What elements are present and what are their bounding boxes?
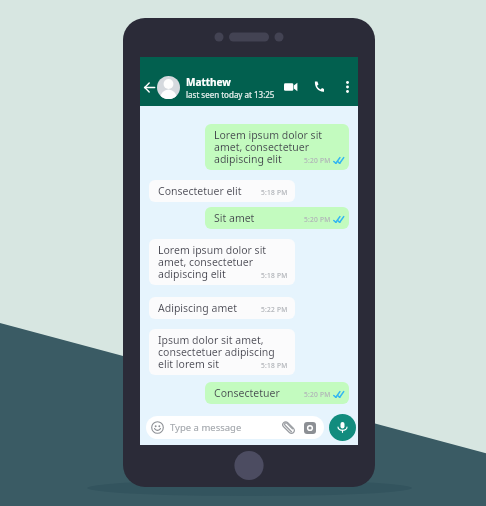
button[interactable]: Consectetuer xyxy=(205,382,349,404)
staticText: 5:22 PM xyxy=(261,305,288,314)
staticText: Adipiscing amet xyxy=(158,301,237,315)
button[interactable]: Lorem ipsum dolor sit amet, consectetuer… xyxy=(205,124,349,170)
staticText: 5:18 PM xyxy=(261,271,288,280)
staticText: Sit amet xyxy=(214,211,255,225)
button[interactable]: Back xyxy=(143,81,156,94)
button[interactable]: Lorem ipsum dolor sit amet, consectetuer… xyxy=(149,239,295,285)
staticText: Matthew xyxy=(186,75,231,89)
staticText: last seen today at 13:25 xyxy=(186,89,275,100)
staticText: Type a message xyxy=(170,421,242,434)
button[interactable]: More options xyxy=(342,76,353,98)
button[interactable]: Record voice message xyxy=(329,414,356,441)
button[interactable]: Type a message xyxy=(146,416,324,439)
button[interactable]: Sit amet xyxy=(205,207,349,229)
button[interactable]: Adipiscing amet xyxy=(149,297,295,319)
button[interactable]: Camera xyxy=(303,421,317,435)
staticText: Lorem ipsum dolor sit amet, consectetuer… xyxy=(158,243,267,281)
staticText: 5:18 PM xyxy=(261,188,288,197)
staticText: Lorem ipsum dolor sit amet, consectetuer… xyxy=(214,128,323,166)
staticText: Ipsum dolor sit amet, consectetuer adipi… xyxy=(158,333,275,371)
button[interactable]: Ipsum dolor sit amet, consectetuer adipi… xyxy=(149,329,295,375)
button[interactable]: Video call xyxy=(283,76,299,98)
staticText: Consectetuer elit xyxy=(158,184,242,198)
button[interactable]: Consectetuer elit xyxy=(149,180,295,202)
staticText: 5:20 PM xyxy=(304,156,331,165)
staticText: 5:20 PM xyxy=(304,390,331,399)
staticText: 5:20 PM xyxy=(304,215,331,224)
button[interactable]: Attach xyxy=(281,420,296,435)
button[interactable]: Call xyxy=(313,76,326,98)
staticText: 5:18 PM xyxy=(261,361,288,370)
staticText: Consectetuer xyxy=(214,386,280,400)
